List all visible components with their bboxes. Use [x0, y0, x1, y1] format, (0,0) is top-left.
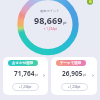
button[interactable]: +1,234pt: [12, 83, 39, 91]
staticText: 71,764: [14, 69, 35, 78]
button[interactable]: おまかせ運用: [3, 57, 48, 95]
staticText: ↑ 1,234pt: [43, 27, 57, 31]
button[interactable]: Campaign: [87, 0, 93, 5]
staticText: +1,234pt: [19, 85, 32, 89]
staticText: 26,905: [62, 69, 83, 78]
staticText: +1,234pt: [68, 85, 81, 89]
staticText: pt: [63, 20, 67, 25]
staticText: 98,669: [34, 14, 63, 26]
staticText: pt: [83, 73, 86, 77]
staticText: おまかせ運用: [12, 61, 34, 65]
button[interactable]: テーマで運用: [51, 57, 97, 95]
staticText: pt: [35, 73, 38, 77]
button[interactable]: +1,234pt: [61, 83, 88, 91]
staticText: 運用ポイント: [40, 9, 60, 13]
staticText: テーマで運用: [60, 61, 82, 65]
